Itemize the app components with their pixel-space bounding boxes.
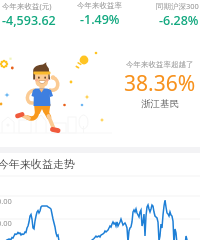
- staticText: -1.49%: [80, 11, 120, 28]
- button[interactable]: 今年来收益(元): [0, 0, 66, 29]
- staticText: 今年来收益(元): [2, 1, 52, 11]
- staticText: 今年来收益率: [77, 1, 122, 10]
- staticText: 今年来收益率超越了: [126, 60, 194, 69]
- staticText: 0.00: [0, 196, 12, 206]
- button[interactable]: 同期沪深300: [133, 0, 200, 29]
- staticText: 今年来收益走势: [0, 157, 75, 171]
- button[interactable]: 今年来收益率: [66, 0, 133, 28]
- staticText: -6.28%: [159, 12, 199, 29]
- staticText: 浙江基民: [141, 98, 179, 110]
- staticText: -4,593.62: [2, 12, 56, 29]
- staticText: 38.36%: [124, 69, 196, 98]
- staticText: 0.00: [0, 218, 12, 228]
- staticText: 同期沪深300: [156, 1, 199, 11]
